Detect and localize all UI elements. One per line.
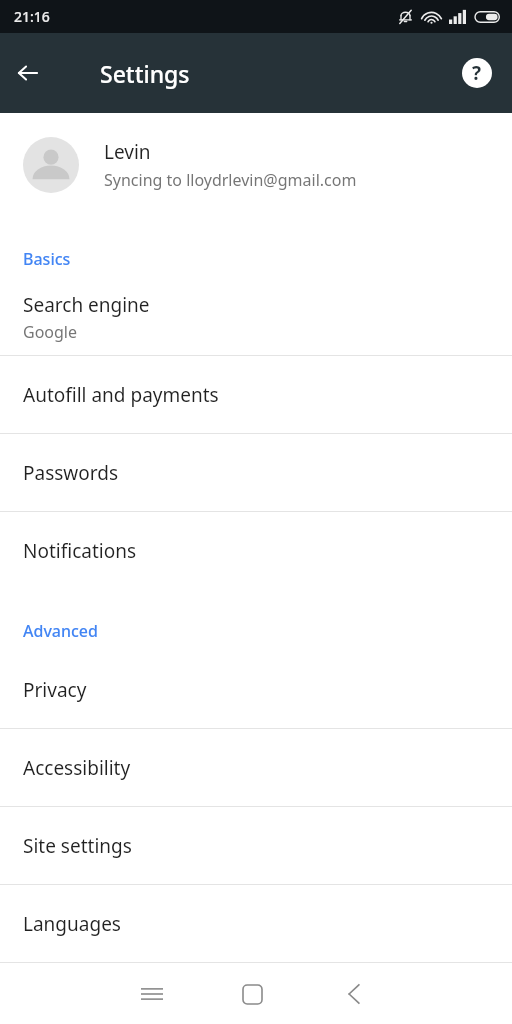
button[interactable]: Home xyxy=(228,970,276,1018)
button[interactable]: Accessibility xyxy=(0,729,512,806)
staticText: Passwords xyxy=(23,460,119,486)
staticText: Advanced xyxy=(23,620,98,642)
button[interactable]: Back xyxy=(330,970,378,1018)
staticText: ? xyxy=(472,60,482,86)
staticText: Languages xyxy=(23,911,121,937)
staticText: Search engine xyxy=(23,292,150,318)
staticText: Google xyxy=(23,321,78,343)
staticText: Basics xyxy=(23,248,71,270)
button[interactable]: Help xyxy=(453,49,501,97)
staticText: 21:16 xyxy=(14,7,50,26)
button[interactable]: Languages xyxy=(0,885,512,962)
staticText: Notifications xyxy=(23,538,137,564)
staticText: Settings xyxy=(100,58,190,89)
button[interactable]: Passwords xyxy=(0,434,512,511)
button[interactable]: Back xyxy=(0,45,56,101)
button[interactable]: Recent apps xyxy=(128,970,176,1018)
staticText: Autofill and payments xyxy=(23,382,219,408)
staticText: Levin xyxy=(104,139,151,165)
button[interactable]: Notifications xyxy=(0,512,512,589)
staticText: Syncing to lloydrlevin@gmail.com xyxy=(104,169,357,191)
button[interactable]: Site settings xyxy=(0,807,512,884)
button[interactable]: Privacy xyxy=(0,651,512,728)
staticText: Accessibility xyxy=(23,755,131,781)
button[interactable]: Search engine xyxy=(0,279,512,355)
button[interactable]: Levin xyxy=(0,113,512,217)
staticText: Privacy xyxy=(23,677,87,703)
staticText: Site settings xyxy=(23,833,132,859)
button[interactable]: Autofill and payments xyxy=(0,356,512,433)
